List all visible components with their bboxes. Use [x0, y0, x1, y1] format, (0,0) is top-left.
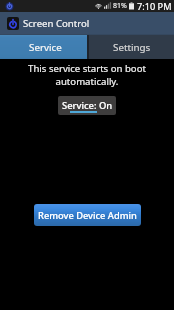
staticText: Service: On — [62, 99, 113, 112]
other: App icon — [7, 17, 19, 30]
button[interactable]: Settings — [89, 35, 174, 59]
staticText: 81% — [113, 1, 127, 11]
staticText: Screen Control — [23, 17, 90, 30]
staticText: 7:10 PM — [137, 0, 172, 12]
button[interactable]: Service: On — [58, 96, 116, 115]
button[interactable]: Remove Device Admin — [34, 204, 141, 226]
other: Screen Control notification — [5, 2, 14, 11]
staticText: This service starts on boot automaticall… — [28, 62, 146, 88]
staticText: Remove Device Admin — [38, 209, 137, 222]
staticText: Service — [29, 41, 62, 54]
staticText: Settings — [113, 41, 151, 54]
button[interactable]: Service — [0, 35, 87, 59]
